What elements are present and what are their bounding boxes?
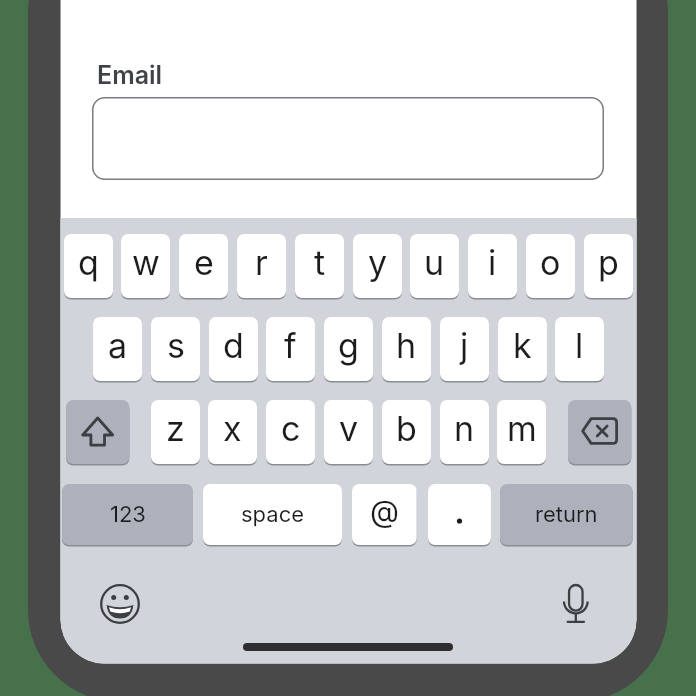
button[interactable] <box>92 97 604 180</box>
button[interactable]: a <box>93 317 142 383</box>
staticText: b <box>396 408 417 449</box>
button[interactable]: t <box>295 234 344 300</box>
button[interactable]: space <box>203 484 342 547</box>
button[interactable]: e <box>179 234 228 300</box>
staticText: e <box>194 242 214 283</box>
staticText: w <box>132 242 160 283</box>
button[interactable] <box>428 484 491 547</box>
staticText: a <box>108 325 128 366</box>
button[interactable]: d <box>209 317 258 383</box>
staticText: r <box>255 242 268 283</box>
staticText: m <box>507 408 537 449</box>
staticText: u <box>424 242 445 283</box>
button[interactable]: @ <box>352 484 417 547</box>
button[interactable]: z <box>151 400 200 466</box>
button[interactable]: u <box>410 234 459 300</box>
button[interactable] <box>552 580 600 628</box>
button[interactable]: k <box>498 317 547 383</box>
button[interactable]: s <box>151 317 200 383</box>
button[interactable]: x <box>208 400 257 466</box>
staticText: y <box>368 242 388 283</box>
button[interactable]: f <box>266 317 315 383</box>
button[interactable]: y <box>353 234 402 300</box>
staticText: x <box>223 408 242 449</box>
button[interactable]: w <box>121 234 170 300</box>
button[interactable]: h <box>382 317 431 383</box>
button[interactable]: r <box>237 234 286 300</box>
staticText: 123 <box>110 501 146 528</box>
staticText: Email <box>97 60 163 90</box>
button[interactable] <box>66 400 129 466</box>
button[interactable]: p <box>584 234 633 300</box>
button[interactable]: i <box>468 234 517 300</box>
button[interactable]: m <box>497 400 546 466</box>
staticText: s <box>167 325 185 366</box>
button[interactable]: g <box>324 317 373 383</box>
button[interactable]: 123 <box>62 484 193 547</box>
button[interactable] <box>568 400 631 466</box>
button[interactable]: q <box>64 234 113 300</box>
staticText: i <box>488 242 497 283</box>
staticText: d <box>223 325 244 366</box>
staticText: f <box>284 325 297 366</box>
staticText: p <box>598 242 619 283</box>
staticText: return <box>535 501 598 528</box>
staticText: space <box>241 501 305 528</box>
staticText: v <box>339 408 359 449</box>
button[interactable]: l <box>555 317 604 383</box>
button[interactable]: b <box>382 400 431 466</box>
button[interactable]: v <box>324 400 373 466</box>
staticText: h <box>396 325 417 366</box>
button[interactable]: n <box>440 400 489 466</box>
button[interactable]: o <box>526 234 575 300</box>
button[interactable]: c <box>266 400 315 466</box>
button[interactable] <box>96 580 144 628</box>
staticText: l <box>575 325 584 366</box>
staticText: q <box>78 242 99 283</box>
staticText: n <box>454 408 475 449</box>
staticText: o <box>540 242 561 283</box>
staticText: j <box>460 325 469 366</box>
button[interactable]: return <box>500 484 633 547</box>
staticText: z <box>166 408 185 449</box>
staticText: @ <box>370 493 399 529</box>
button[interactable]: j <box>440 317 489 383</box>
staticText: k <box>513 325 532 366</box>
staticText: t <box>314 242 326 283</box>
staticText: g <box>338 325 359 366</box>
staticText: c <box>281 408 301 449</box>
